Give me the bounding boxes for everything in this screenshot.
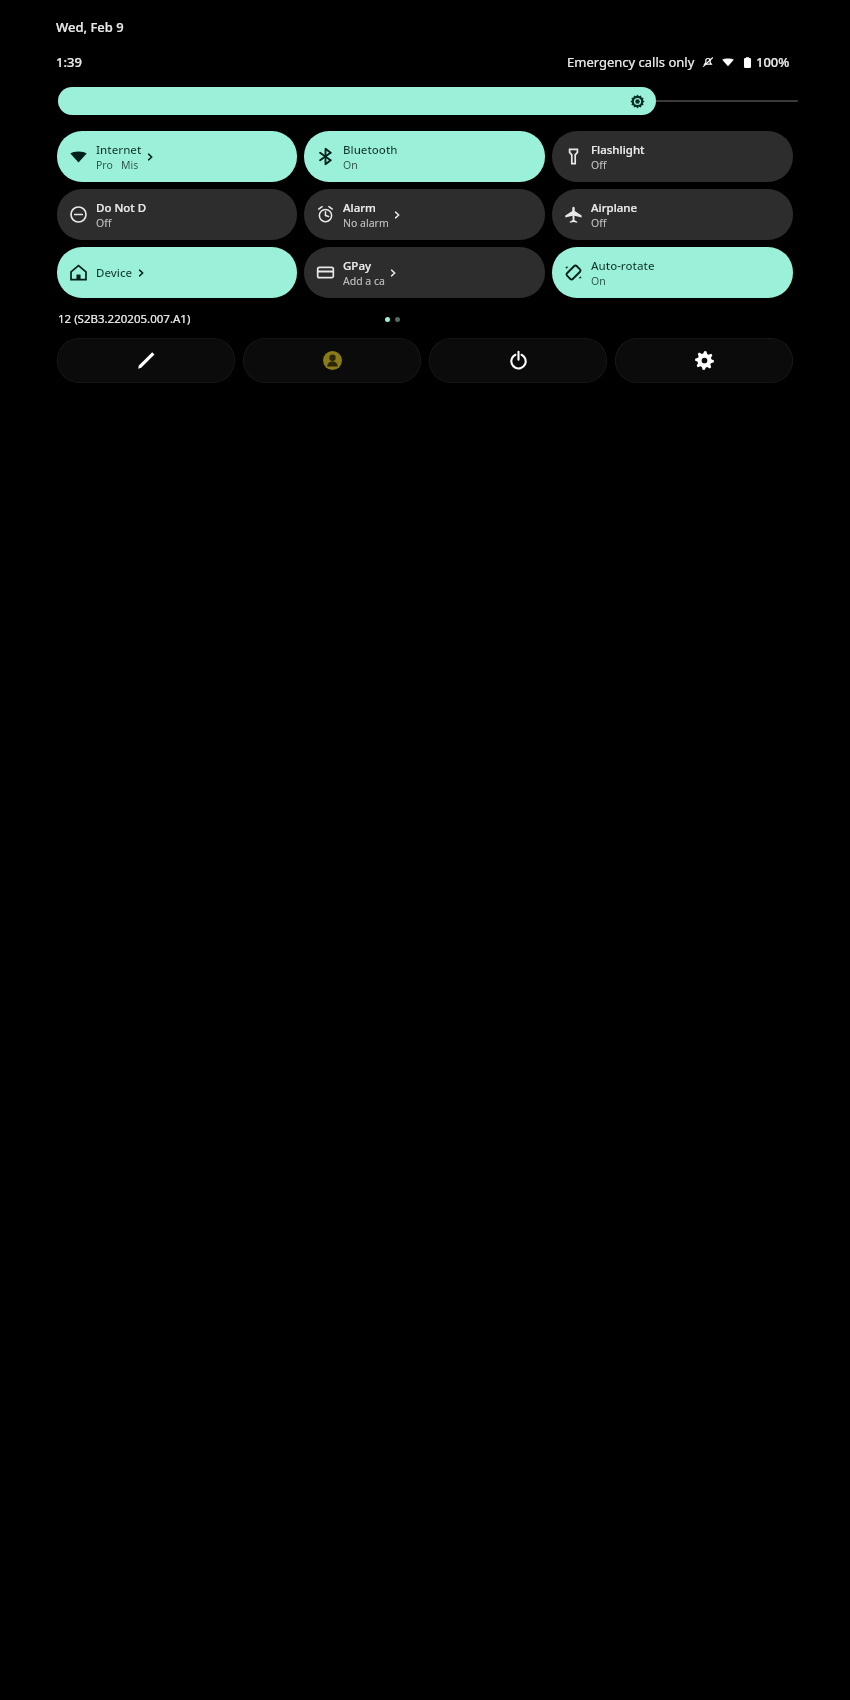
button[interactable]: Airplane <box>552 189 793 240</box>
staticText: On <box>343 158 358 172</box>
staticText: Internet <box>96 142 142 158</box>
button[interactable]: Bluetooth <box>304 131 545 182</box>
staticText: Do Not D <box>96 200 147 216</box>
staticText: Off <box>591 216 607 230</box>
staticText: Wed, Feb 9 <box>56 18 124 36</box>
staticText: Emergency calls only <box>567 53 695 71</box>
button[interactable]: Device <box>57 247 297 298</box>
button[interactable]: Alarm <box>304 189 545 240</box>
staticText: Pro Mis <box>96 158 139 172</box>
staticText: Flashlight <box>591 142 645 158</box>
staticText: No alarm <box>343 216 389 230</box>
button[interactable]: Flashlight <box>552 131 793 182</box>
staticText: Airplane <box>591 200 641 216</box>
button[interactable]: User account <box>243 338 421 383</box>
button[interactable]: Settings <box>615 338 793 383</box>
button[interactable]: Do Not D <box>57 189 297 240</box>
staticText: Auto-rotate <box>591 258 655 274</box>
staticText: Off <box>96 216 112 230</box>
button[interactable]: GPay <box>304 247 545 298</box>
staticText: Add a ca <box>343 274 385 288</box>
button[interactable]: Auto-rotate <box>552 247 793 298</box>
staticText: 12 (S2B3.220205.007.A1) <box>58 311 191 327</box>
staticText: Bluetooth <box>343 142 398 158</box>
button[interactable]: Brightness <box>58 87 656 115</box>
button[interactable]: Power <box>429 338 607 383</box>
staticText: 100% <box>756 53 790 71</box>
button[interactable]: Edit tiles <box>57 338 235 383</box>
staticText: On <box>591 274 606 288</box>
staticText: 1:39 <box>56 53 82 71</box>
staticText: Off <box>591 158 607 172</box>
staticText: GPay <box>343 258 372 274</box>
staticText: Device <box>96 265 133 281</box>
staticText: Alarm <box>343 200 376 216</box>
button[interactable]: Internet <box>57 131 297 182</box>
